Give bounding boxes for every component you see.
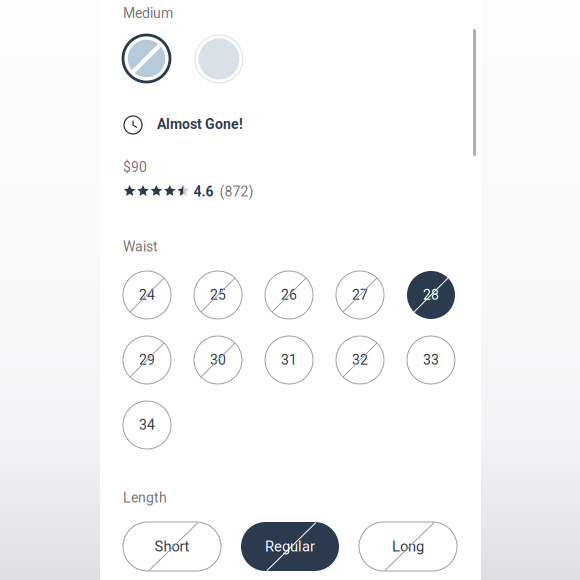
staticText: 27 [352, 287, 368, 303]
button[interactable]: Long [359, 522, 457, 571]
staticText: 26 [281, 287, 297, 303]
staticText: 31 [281, 352, 297, 368]
staticText: 4.6 [194, 183, 214, 200]
staticText: Length [123, 489, 167, 506]
staticText: Short [154, 538, 189, 555]
staticText: (872) [219, 183, 253, 200]
button[interactable]: 29 [123, 336, 171, 384]
button[interactable]: 34 [123, 401, 171, 449]
staticText: 29 [139, 352, 155, 368]
button[interactable]: 26 [265, 271, 313, 319]
button[interactable]: 32 [336, 336, 384, 384]
staticText: Regular [265, 538, 315, 555]
button[interactable]: 24 [123, 271, 171, 319]
staticText: $90 [123, 159, 147, 175]
staticText: Waist [123, 238, 158, 255]
button[interactable]: 30 [194, 336, 242, 384]
staticText: Long [392, 538, 424, 555]
staticText: 34 [139, 417, 155, 433]
staticText: 32 [352, 352, 368, 368]
button[interactable]: 27 [336, 271, 384, 319]
staticText: Medium [123, 5, 173, 21]
staticText: 25 [210, 287, 226, 303]
button[interactable]: 25 [194, 271, 242, 319]
button[interactable]: Short [123, 522, 221, 571]
staticText: 30 [210, 352, 226, 368]
button[interactable]: 28 [407, 271, 455, 319]
button[interactable]: Regular [241, 522, 339, 571]
staticText: 33 [423, 352, 439, 368]
staticText: 28 [423, 287, 439, 303]
button[interactable]: 31 [265, 336, 313, 384]
staticText: 24 [139, 287, 155, 303]
button[interactable]: 33 [407, 336, 455, 384]
button[interactable]: Light wash colour [195, 35, 243, 83]
staticText: Almost Gone! [157, 116, 243, 132]
button[interactable]: Medium wash colour, selected, sold out [123, 35, 170, 82]
